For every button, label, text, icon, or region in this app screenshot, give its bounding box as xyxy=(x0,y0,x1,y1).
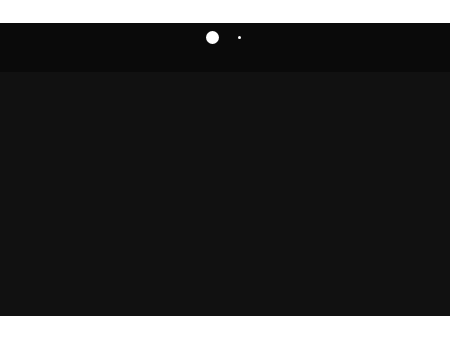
button[interactable]: Page 1, selected xyxy=(206,31,219,44)
button[interactable]: Page 2 xyxy=(238,36,241,39)
